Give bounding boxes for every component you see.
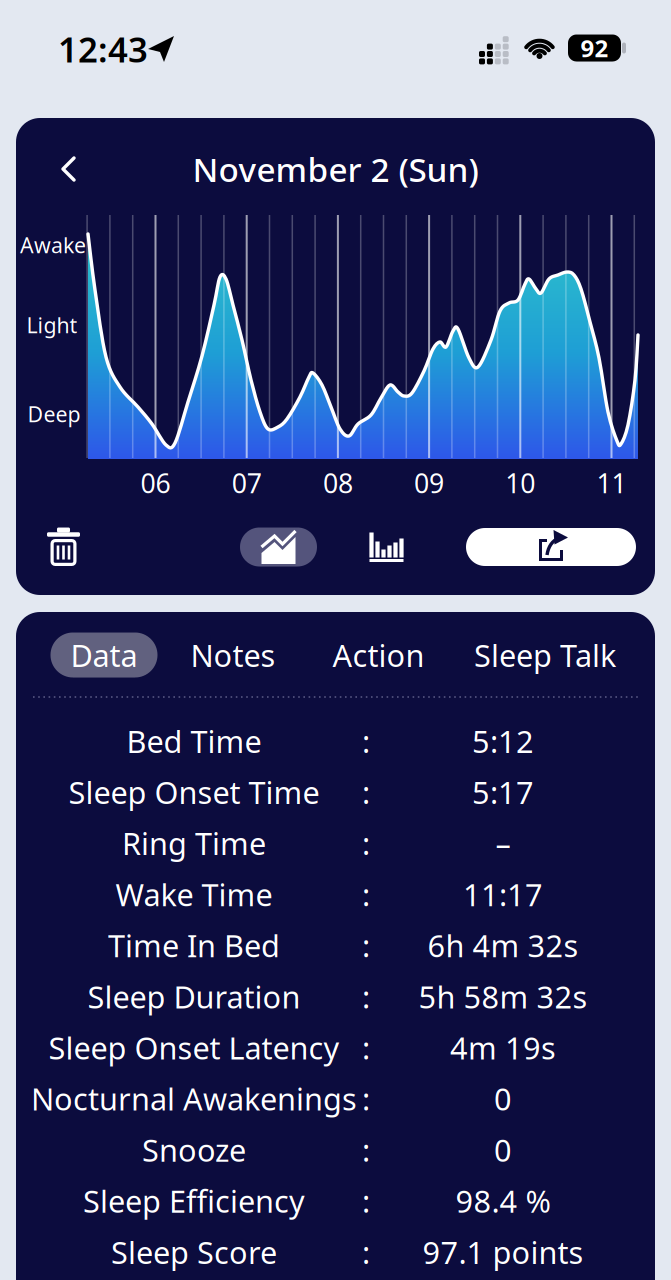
staticText: 5h 58m 32s [418,976,587,1017]
staticText: : [362,1232,370,1272]
staticText: 97.1 points [422,1232,583,1272]
staticText: 08 [323,465,353,501]
staticText: Sleep Score [111,1232,277,1272]
staticText: : [362,721,370,761]
button[interactable]: Line chart [240,527,317,566]
staticText: 0 [494,1078,512,1119]
staticText: 11 [596,465,626,501]
button[interactable]: Share [466,528,636,566]
staticText: Sleep Talk [474,635,616,675]
staticText: 5:12 [472,721,534,761]
staticText: Nocturnal Awakenings [31,1078,357,1119]
staticText: Sleep Duration [87,976,300,1017]
staticText: Deep [27,400,80,428]
button[interactable]: Sleep Talk [460,632,630,677]
staticText: Ring Time [122,823,266,863]
staticText: Wake Time [115,874,272,915]
staticText: 98.4 % [455,1180,550,1221]
staticText: 10 [505,465,535,501]
button[interactable]: Action [323,632,433,677]
staticText: Sleep Onset Latency [48,1027,339,1068]
staticText: Bed Time [126,721,261,761]
staticText: : [362,1027,370,1068]
staticText: 07 [232,465,262,501]
staticText: : [362,976,370,1017]
staticText: Sleep Onset Time [68,772,319,812]
staticText: : [362,1180,370,1221]
button[interactable]: Delete [41,524,85,568]
staticText: : [362,925,370,966]
staticText: 06 [140,465,170,501]
staticText: – [495,823,510,863]
staticText: 11:17 [463,874,543,915]
staticText: Awake [20,231,86,259]
staticText: Light [26,311,77,339]
staticText: : [362,1078,370,1119]
staticText: November 2 (Sun) [192,147,478,191]
button[interactable]: Back [47,147,91,191]
staticText: 92 [580,32,608,64]
staticText: Notes [190,635,275,675]
staticText: Action [332,635,424,675]
staticText: 6h 4m 32s [427,925,578,966]
button[interactable]: Bar chart [369,531,405,563]
staticText: Sleep Efficiency [83,1180,305,1221]
staticText: : [362,1129,370,1170]
staticText: Time In Bed [108,925,280,966]
staticText: 0 [494,1129,512,1170]
staticText: Snooze [142,1129,246,1170]
staticText: : [362,874,370,915]
staticText: 4m 19s [450,1027,556,1068]
staticText: : [362,772,370,812]
button[interactable]: Notes [178,632,288,677]
button[interactable]: Data [50,632,157,677]
staticText: Data [70,635,137,675]
staticText: 5:17 [472,772,534,812]
staticText: 12:43 [58,26,148,72]
staticText: : [362,823,370,863]
staticText: 09 [414,465,444,501]
